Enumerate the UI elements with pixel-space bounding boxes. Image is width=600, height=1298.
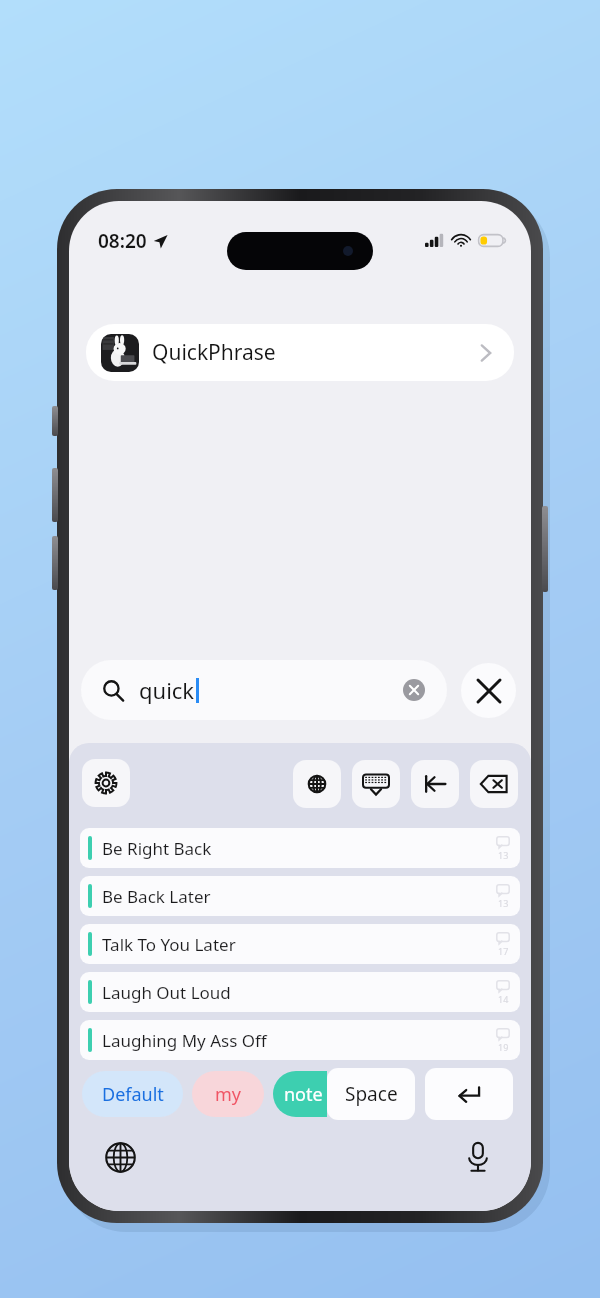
staticText: 19 <box>498 1041 509 1053</box>
button[interactable]: Laugh Out Loud <box>80 972 520 1012</box>
button[interactable]: Be Right Back <box>80 828 520 868</box>
staticText: Be Back Later <box>102 885 211 908</box>
button[interactable]: Voice input <box>461 1140 495 1174</box>
button[interactable]: Talk To You Later <box>80 924 520 964</box>
button[interactable]: Space <box>327 1068 415 1120</box>
button[interactable]: Clear text <box>403 679 425 701</box>
button[interactable]: Default <box>82 1071 183 1117</box>
button[interactable]: Backspace <box>470 760 518 808</box>
staticText: my <box>215 1082 242 1107</box>
button[interactable]: Be Back Later <box>80 876 520 916</box>
button[interactable]: Keyboard <box>352 760 400 808</box>
staticText: QuickPhrase <box>152 338 276 367</box>
button[interactable]: my <box>192 1071 264 1117</box>
staticText: note <box>284 1082 323 1107</box>
staticText: Laugh Out Loud <box>102 981 231 1004</box>
staticText: Space <box>345 1081 398 1107</box>
staticText: 13 <box>498 897 509 909</box>
button[interactable]: Tab back <box>411 760 459 808</box>
staticText: Be Right Back <box>102 837 212 860</box>
button[interactable]: quick <box>81 660 447 720</box>
staticText: 14 <box>498 993 509 1005</box>
staticText: Talk To You Later <box>102 933 236 956</box>
button[interactable]: Settings <box>82 759 130 807</box>
button[interactable]: note <box>273 1071 327 1117</box>
button[interactable]: Return <box>425 1068 513 1120</box>
staticText: 17 <box>498 945 509 957</box>
staticText: 13 <box>498 849 509 861</box>
button[interactable]: Switch language <box>103 1140 137 1174</box>
staticText: quick <box>139 675 195 705</box>
staticText: Laughing My Ass Off <box>102 1029 267 1052</box>
staticText: Default <box>102 1082 164 1107</box>
staticText: 08:20 <box>98 228 147 254</box>
button[interactable]: Close <box>461 663 516 718</box>
button[interactable]: Laughing My Ass Off <box>80 1020 520 1060</box>
button[interactable]: QuickPhrase <box>86 324 514 381</box>
button[interactable]: Globe <box>293 760 341 808</box>
